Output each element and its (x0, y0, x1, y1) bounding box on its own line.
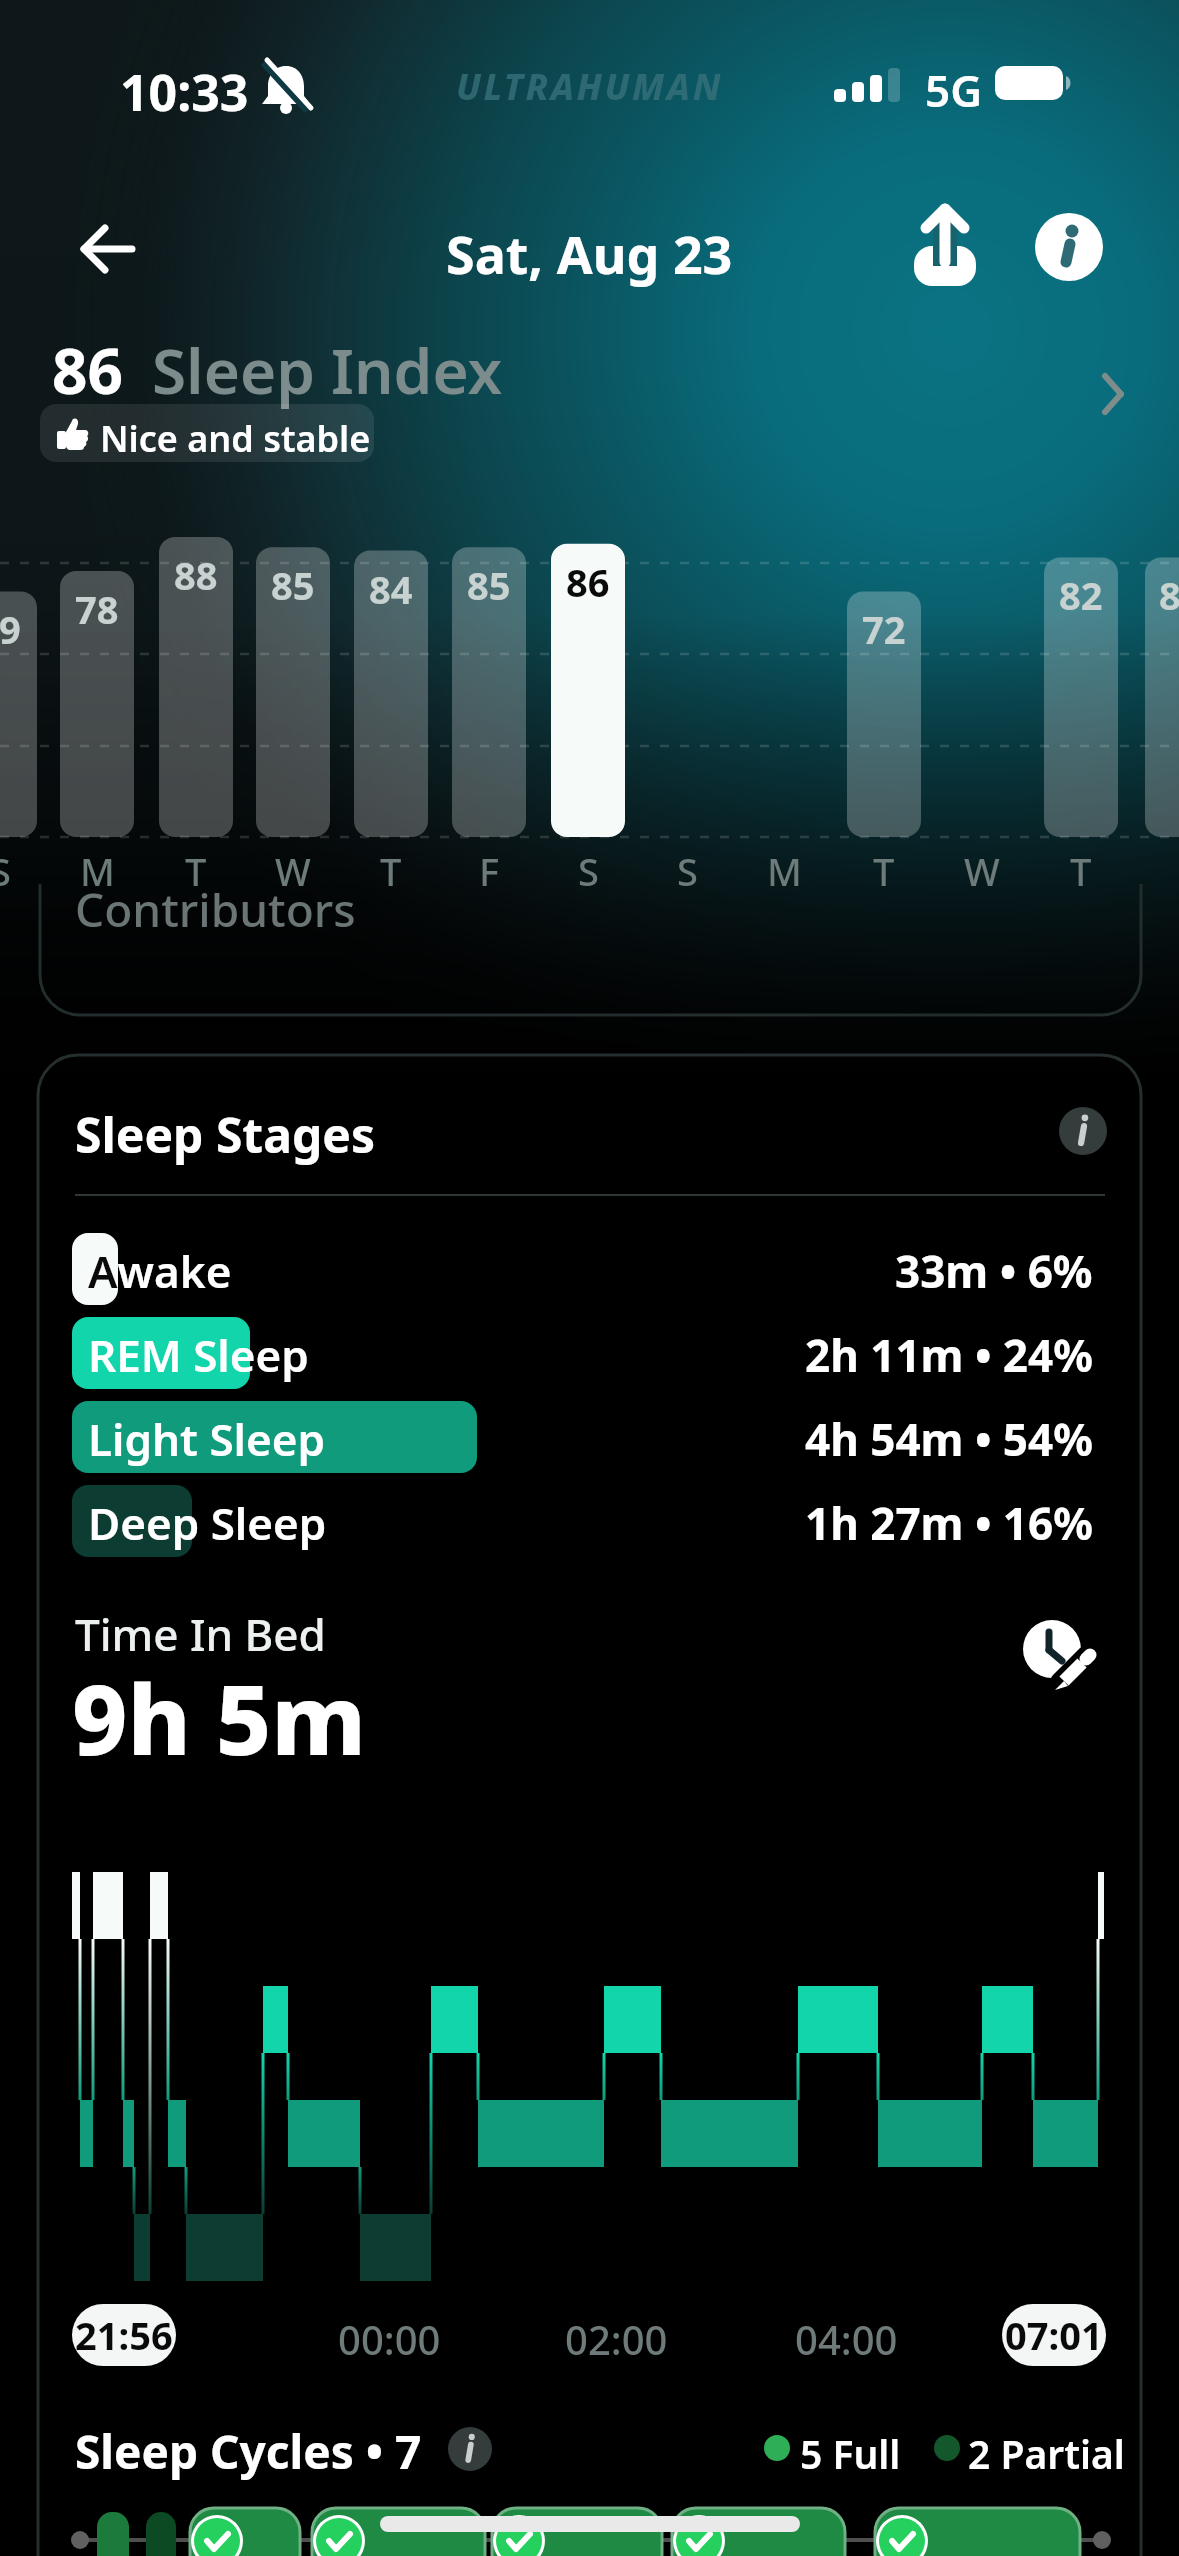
staticText: 72 (862, 603, 906, 655)
button[interactable] (1012, 1608, 1102, 1698)
staticText: W (275, 845, 311, 897)
staticText: T (185, 845, 207, 897)
staticText: 9 (0, 603, 21, 655)
staticText: 8 (1159, 569, 1179, 621)
staticText: 9h 5m (72, 1652, 366, 1783)
staticText: 10:33 (120, 58, 249, 126)
button[interactable] (448, 2427, 492, 2471)
staticText: Sat, Aug 23 (446, 218, 733, 289)
staticText: Light Sleep (88, 1409, 326, 1469)
staticText: 85 (467, 559, 511, 611)
staticText: Contributors (75, 878, 356, 941)
staticText: 86 (52, 328, 123, 412)
staticText: Awake (88, 1241, 232, 1301)
staticText: 33m • 6% (895, 1241, 1093, 1301)
button[interactable]: 07:01 (1002, 2304, 1106, 2366)
button[interactable] (190, 2508, 300, 2556)
button[interactable] (70, 210, 150, 290)
button[interactable] (672, 2508, 845, 2556)
staticText: Time In Bed (75, 1604, 326, 1664)
staticText: 02:00 (565, 2312, 668, 2366)
button[interactable] (900, 200, 990, 296)
staticText: F (479, 845, 500, 897)
staticText: T (380, 845, 402, 897)
button[interactable] (492, 2508, 662, 2556)
staticText: 78 (75, 583, 119, 635)
staticText: 82 (1059, 569, 1103, 621)
staticText: M (80, 845, 115, 897)
staticText: 5 Full (800, 2427, 901, 2480)
button[interactable] (40, 320, 1140, 404)
staticText: T (873, 845, 895, 897)
staticText: M (767, 845, 802, 897)
staticText: S (578, 845, 599, 897)
staticText: T (1070, 845, 1092, 897)
staticText: 04:00 (795, 2312, 898, 2366)
staticText: 1h 27m • 16% (805, 1493, 1093, 1553)
staticText: W (964, 845, 1000, 897)
staticText: 4h 54m • 54% (805, 1409, 1093, 1469)
staticText: 88 (174, 549, 218, 601)
button[interactable] (875, 2508, 1080, 2556)
staticText: 2 Partial (968, 2427, 1125, 2480)
button[interactable]: 21:56 (72, 2304, 176, 2366)
staticText: REM Sleep (88, 1325, 309, 1385)
staticText: Sleep Index (152, 328, 503, 412)
staticText: 84 (369, 563, 413, 615)
staticText: Awake (88, 1241, 118, 1305)
staticText: 86 (566, 556, 610, 608)
staticText: 2h 11m • 24% (805, 1325, 1093, 1385)
staticText: S (677, 845, 698, 897)
staticText: 85 (271, 559, 315, 611)
staticText: 21:56 (75, 2309, 173, 2361)
staticText: 5G (925, 60, 983, 120)
staticText: 00:00 (338, 2312, 441, 2366)
button[interactable] (1034, 212, 1104, 282)
button[interactable]: Nice and stable (40, 404, 374, 462)
staticText: ULTRAHUMAN (456, 62, 723, 111)
staticText: Deep Sleep (88, 1493, 327, 1553)
staticText: S (0, 845, 11, 897)
staticText: Nice and stable (100, 414, 371, 462)
button[interactable] (312, 2508, 485, 2556)
staticText: Sleep Stages (75, 1102, 376, 1167)
staticText: Sleep Cycles • 7 (75, 2420, 422, 2483)
button[interactable] (1059, 1107, 1107, 1155)
staticText: 07:01 (1005, 2309, 1103, 2361)
